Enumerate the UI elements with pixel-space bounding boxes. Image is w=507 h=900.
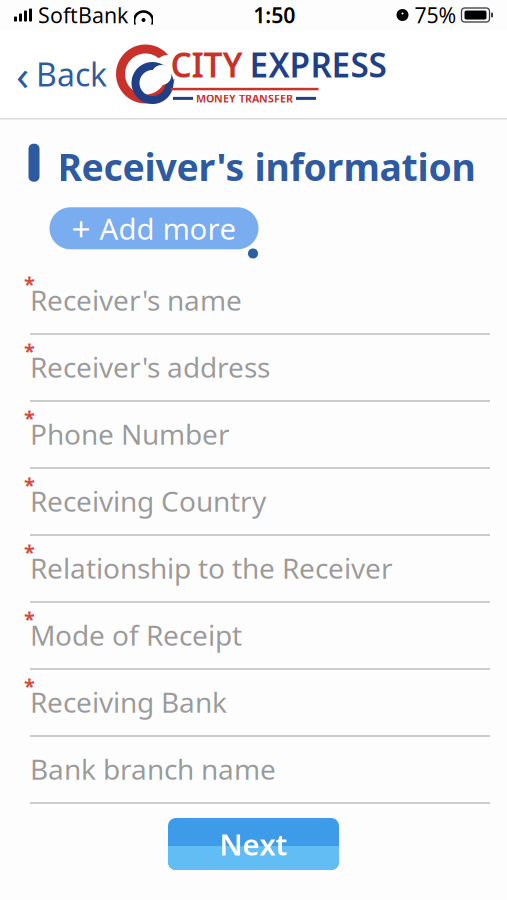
button[interactable]: Receiver's address bbox=[0, 334, 507, 401]
button[interactable]: Phone Number bbox=[0, 401, 507, 468]
button[interactable]: + bbox=[49, 207, 258, 249]
staticText: 75% bbox=[414, 1, 456, 29]
staticText: Add more bbox=[99, 209, 236, 248]
staticText: Next bbox=[219, 824, 287, 863]
button[interactable]: ‹ bbox=[0, 38, 123, 110]
staticText: * bbox=[24, 538, 35, 565]
staticText: Relationship to the Receiver bbox=[30, 549, 393, 587]
staticText: * bbox=[24, 404, 35, 431]
staticText: Bank branch name bbox=[30, 750, 276, 788]
staticText: + bbox=[71, 206, 90, 250]
staticText: Back bbox=[36, 53, 107, 95]
staticText: EXPRESS bbox=[249, 42, 386, 87]
button[interactable]: Receiving Bank bbox=[0, 669, 507, 736]
staticText: Receiving Country bbox=[30, 482, 266, 520]
staticText: SoftBank bbox=[38, 1, 128, 29]
staticText: ‹ bbox=[16, 46, 29, 102]
button[interactable]: Relationship to the Receiver bbox=[0, 535, 507, 602]
staticText: Receiver's name bbox=[30, 281, 242, 319]
button[interactable]: Next bbox=[168, 818, 339, 870]
staticText: Receiving Bank bbox=[30, 683, 227, 721]
staticText: CITY bbox=[170, 42, 242, 87]
staticText: * bbox=[24, 672, 35, 699]
staticText: * bbox=[24, 605, 35, 632]
staticText: * bbox=[24, 270, 35, 297]
staticText: MONEY TRANSFER bbox=[196, 91, 293, 105]
staticText: Mode of Receipt bbox=[30, 616, 242, 654]
staticText: * bbox=[24, 337, 35, 364]
button[interactable]: Bank branch name bbox=[0, 736, 507, 803]
staticText: Phone Number bbox=[30, 415, 230, 453]
button[interactable]: Receiver's name bbox=[0, 267, 507, 334]
staticText: 1:50 bbox=[253, 1, 295, 29]
button[interactable]: Receiving Country bbox=[0, 468, 507, 535]
staticText: Receiver's information bbox=[57, 142, 475, 191]
button[interactable]: Mode of Receipt bbox=[0, 602, 507, 669]
staticText: * bbox=[24, 471, 35, 498]
staticText: Receiver's address bbox=[30, 348, 270, 386]
